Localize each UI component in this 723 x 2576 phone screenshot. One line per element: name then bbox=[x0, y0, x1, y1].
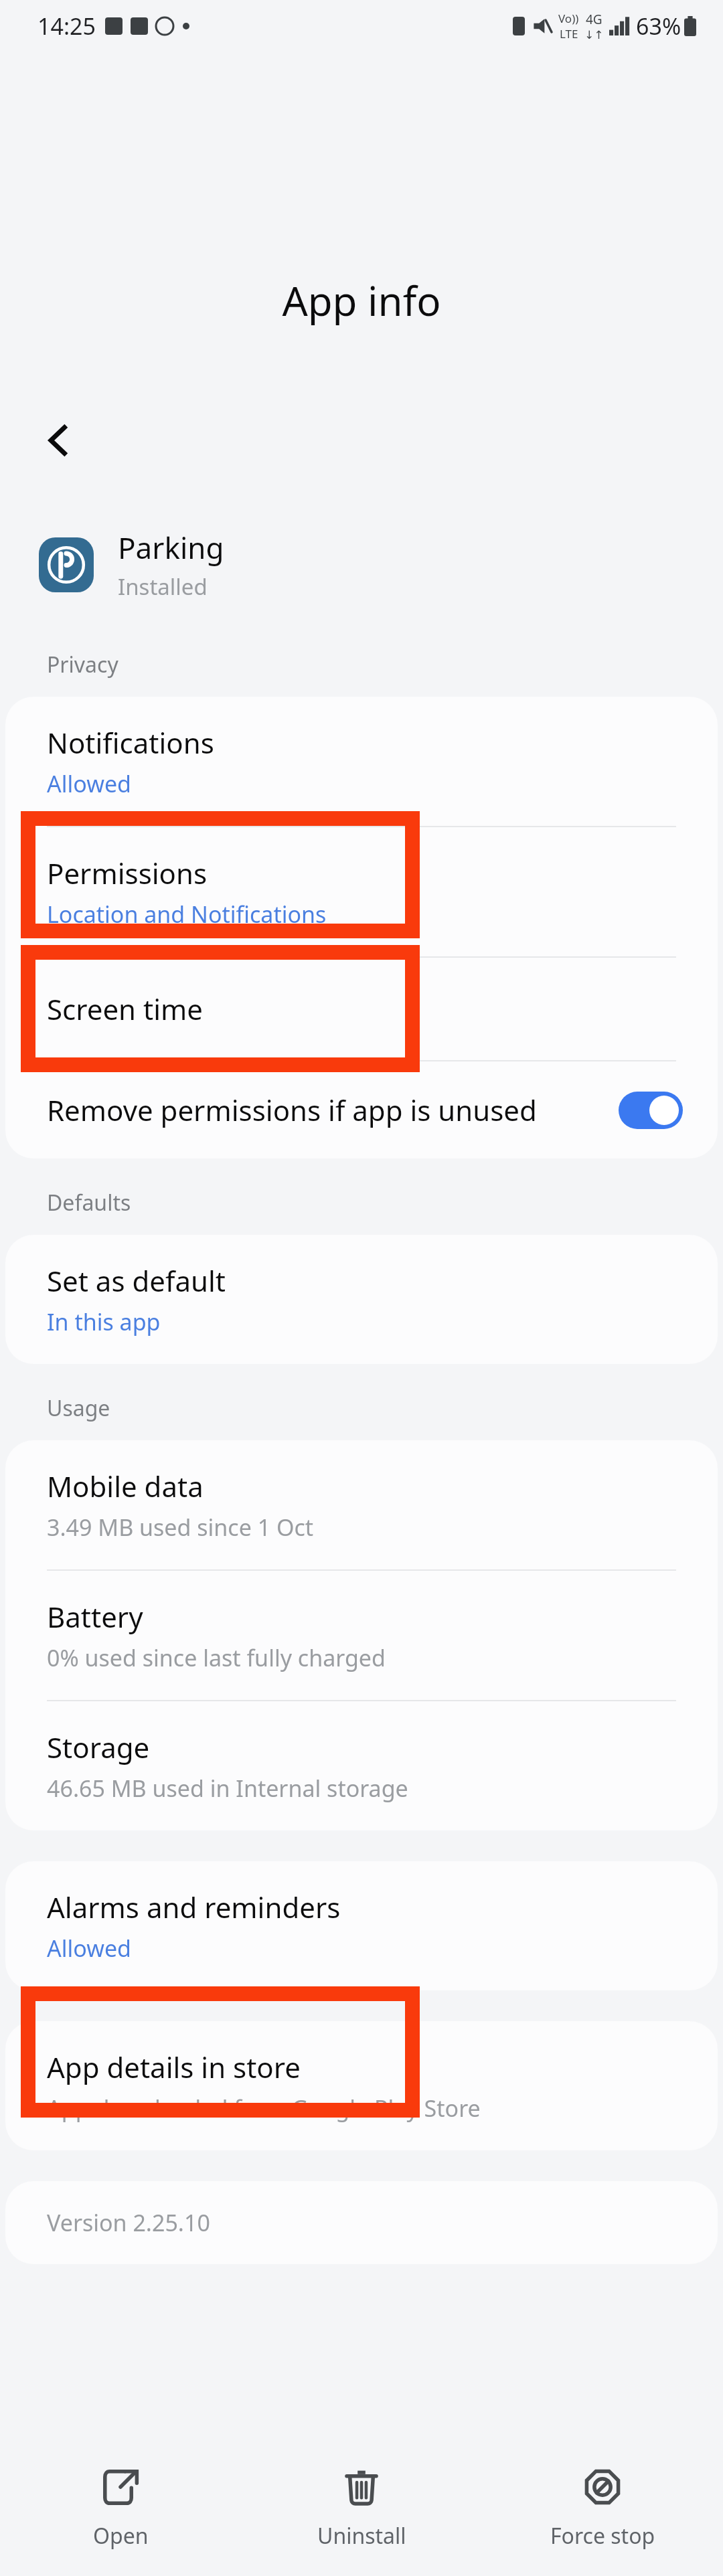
staticText: Remove permissions if app is unused bbox=[47, 1091, 619, 1129]
staticText: Defaults bbox=[47, 1188, 131, 1217]
button[interactable]: Remove permissions toggle, on bbox=[619, 1092, 683, 1129]
button[interactable]: Open bbox=[0, 2442, 241, 2576]
staticText: 3.49 MB used since 1 Oct bbox=[47, 1512, 314, 1543]
staticText: Uninstall bbox=[317, 2521, 406, 2551]
button[interactable]: Uninstall bbox=[241, 2442, 482, 2576]
staticText: In this app bbox=[47, 1306, 161, 1337]
staticText: Set as default bbox=[47, 1262, 226, 1300]
button[interactable]: Remove permissions if app is unused bbox=[5, 1061, 718, 1158]
button[interactable]: Notifications bbox=[5, 697, 718, 826]
staticText: 0% used since last fully charged bbox=[47, 1642, 386, 1673]
button[interactable]: App details in store bbox=[5, 2021, 718, 2150]
staticText: LTE bbox=[560, 26, 578, 41]
button[interactable]: Force stop bbox=[482, 2442, 723, 2576]
staticText: 63% bbox=[636, 11, 681, 41]
staticText: 46.65 MB used in Internal storage bbox=[47, 1773, 408, 1804]
staticText: Privacy bbox=[47, 650, 118, 679]
staticText: Vo)) bbox=[558, 11, 579, 26]
button[interactable]: Permissions bbox=[5, 827, 718, 956]
button[interactable]: Parking bbox=[0, 527, 723, 602]
staticText: 4G bbox=[586, 11, 602, 28]
staticText: Battery bbox=[47, 1598, 143, 1636]
staticText: App info bbox=[0, 273, 723, 328]
staticText: Screen time bbox=[47, 990, 203, 1028]
staticText: App details in store bbox=[47, 2048, 301, 2086]
button[interactable]: Mobile data bbox=[5, 1440, 718, 1569]
staticText: Installed bbox=[118, 572, 208, 602]
staticText: Storage bbox=[47, 1728, 150, 1766]
staticText: Open bbox=[93, 2521, 149, 2551]
staticText: Alarms and reminders bbox=[47, 1888, 341, 1926]
staticText: Version 2.25.10 bbox=[47, 2207, 210, 2238]
staticText: App downloaded from Google Play Store bbox=[47, 2093, 481, 2124]
staticText: Location and Notifications bbox=[47, 899, 327, 930]
staticText: Usage bbox=[47, 1393, 110, 1423]
staticText: Permissions bbox=[47, 854, 208, 892]
staticText: ↓↑ bbox=[584, 28, 604, 41]
staticText: Force stop bbox=[550, 2521, 655, 2551]
button[interactable]: Storage bbox=[5, 1701, 718, 1830]
button[interactable]: Back bbox=[27, 408, 91, 473]
staticText: Allowed bbox=[47, 768, 131, 799]
button[interactable]: Set as default bbox=[5, 1235, 718, 1364]
staticText: Parking bbox=[118, 527, 224, 568]
staticText: Allowed bbox=[47, 1933, 131, 1964]
button[interactable]: Screen time bbox=[5, 958, 718, 1060]
staticText: 14:25 bbox=[37, 11, 96, 41]
button[interactable]: Battery bbox=[5, 1571, 718, 1700]
staticText: Notifications bbox=[47, 723, 214, 762]
staticText: Mobile data bbox=[47, 1467, 204, 1505]
button[interactable]: Alarms and reminders bbox=[5, 1861, 718, 1990]
